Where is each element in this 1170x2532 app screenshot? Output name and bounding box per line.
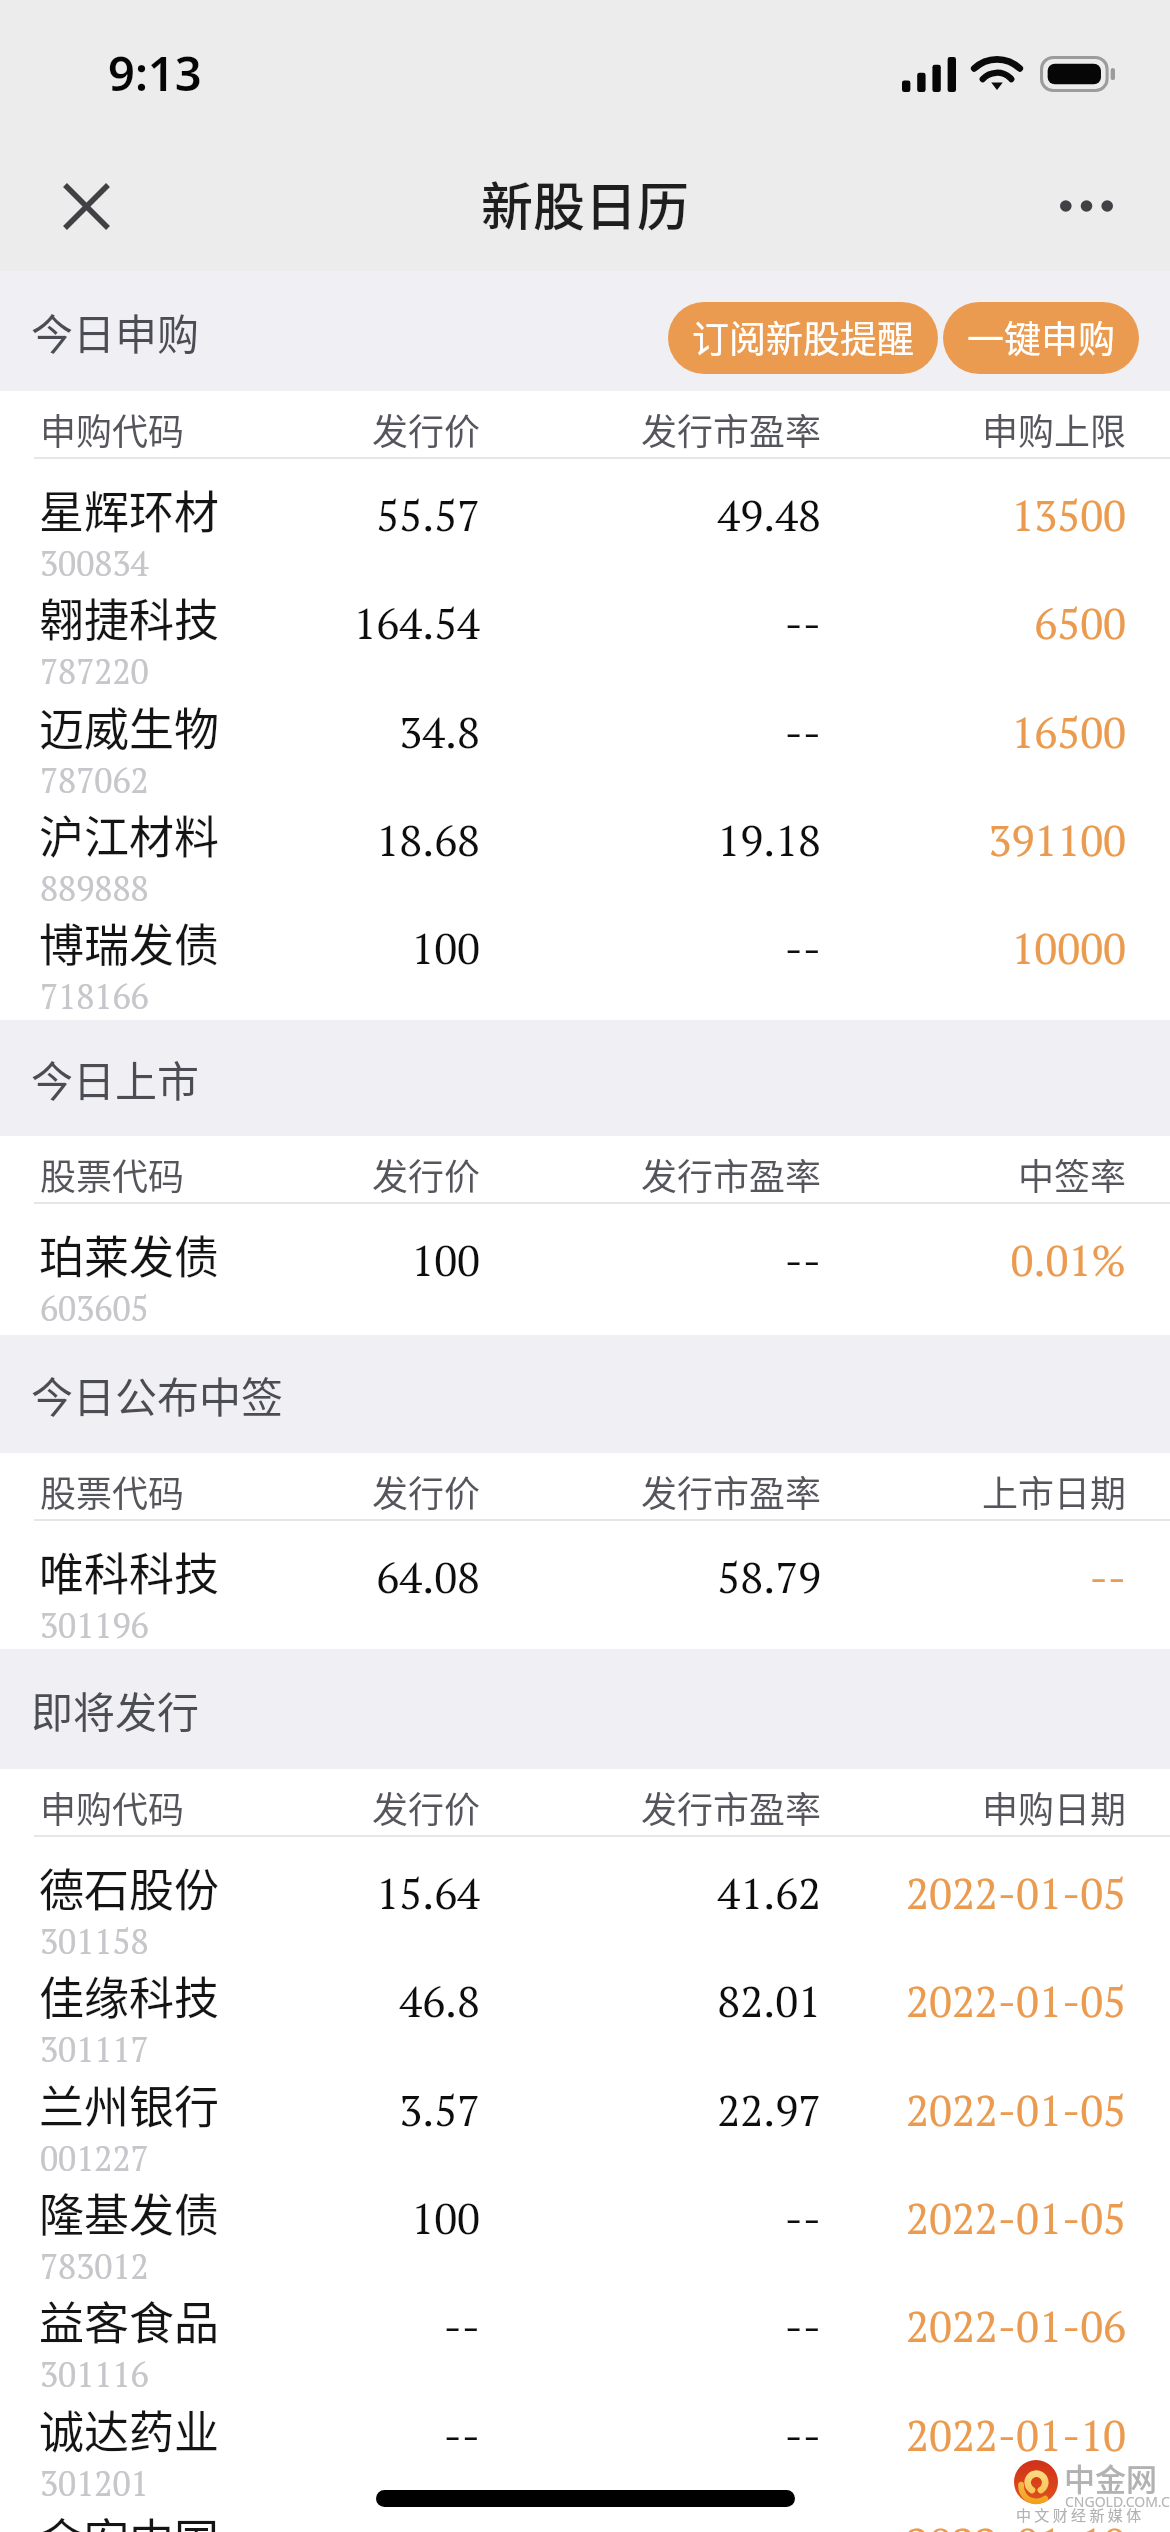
staticText: 博瑞发债 — [39, 910, 220, 975]
staticText: 19.18 — [481, 811, 821, 868]
staticText: 佳缘科技 — [39, 1963, 220, 2028]
staticText: 787062 — [40, 758, 149, 803]
staticText: 9:13 — [108, 41, 202, 105]
staticText: 申购日期 — [786, 1781, 1126, 1833]
staticText: 2022-01-10 — [786, 2406, 1126, 2463]
staticText: 翱捷科技 — [39, 585, 220, 650]
staticText: 中 文 财 经 新 媒 体 — [1016, 2504, 1142, 2526]
staticText: 6500 — [786, 594, 1126, 651]
button[interactable]: 唯科科技 — [0, 1521, 1170, 1629]
staticText: 申购上限 — [786, 403, 1126, 455]
staticText: 100 — [140, 1231, 480, 1288]
staticText: -- — [481, 919, 821, 976]
staticText: 49.48 — [481, 486, 821, 543]
staticText: 中签率 — [786, 1148, 1126, 1200]
staticText: 申购代码 — [40, 1781, 185, 1833]
staticText: 今日申购 — [31, 301, 200, 362]
staticText: 金宏中国 — [39, 2505, 220, 2532]
staticText: 发行市盈率 — [481, 1148, 821, 1200]
staticText: 718166 — [40, 974, 149, 1019]
staticText: 783012 — [40, 2244, 149, 2289]
staticText: 34.8 — [140, 703, 480, 760]
staticText: 15.64 — [140, 1864, 480, 1921]
staticText: 3.57 — [140, 2081, 480, 2138]
staticText: 391100 — [786, 811, 1126, 868]
button[interactable]: 隆基发债 — [0, 2162, 1170, 2270]
staticText: 今日公布中签 — [31, 1364, 284, 1425]
staticText: 迈威生物 — [39, 694, 220, 759]
button[interactable]: 订阅新股提醒 — [668, 302, 938, 374]
staticText: 301116 — [40, 2352, 149, 2397]
staticText: 申购代码 — [40, 403, 185, 455]
staticText: 中金网 — [1064, 2455, 1157, 2500]
staticText: 珀莱发债 — [39, 1222, 220, 1287]
staticText: 001227 — [40, 2136, 149, 2181]
staticText: 股票代码 — [40, 1148, 185, 1200]
staticText: 2022-01-05 — [786, 2189, 1126, 2246]
staticText: 64.08 — [140, 1548, 480, 1605]
button[interactable]: 博瑞发债 — [0, 892, 1170, 1001]
staticText: 300834 — [40, 541, 149, 586]
staticText: 唯科科技 — [39, 1539, 220, 1604]
staticText: 上市日期 — [786, 1465, 1126, 1517]
staticText: -- — [140, 2297, 480, 2354]
button[interactable]: 珀莱发债 — [0, 1204, 1170, 1312]
button[interactable]: 迈威生物 — [0, 676, 1170, 784]
staticText: 301117 — [40, 2027, 149, 2072]
staticText: 301196 — [40, 1603, 149, 1648]
staticText: -- — [786, 1548, 1126, 1605]
staticText: -- — [140, 2406, 480, 2463]
staticText: -- — [481, 2406, 821, 2463]
button[interactable]: 德石股份 — [0, 1837, 1170, 1945]
button[interactable]: 诚达药业 — [0, 2379, 1170, 2487]
staticText: 58.79 — [481, 1548, 821, 1605]
staticText: 发行市盈率 — [481, 1465, 821, 1517]
staticText: 股票代码 — [40, 1465, 185, 1517]
button[interactable]: 佳缘科技 — [0, 1945, 1170, 2054]
staticText: 隆基发债 — [39, 2180, 220, 2245]
button[interactable]: 益客食品 — [0, 2270, 1170, 2379]
staticText: 益客食品 — [39, 2288, 220, 2353]
staticText: 新股日历 — [481, 166, 690, 241]
staticText: 46.8 — [140, 1972, 480, 2029]
button[interactable]: 兰州银行 — [0, 2054, 1170, 2162]
staticText: 2022-01-05 — [786, 1864, 1126, 1921]
staticText: 41.62 — [481, 1864, 821, 1921]
button[interactable]: 星辉环材 — [0, 459, 1170, 567]
staticText: 沪江材料 — [39, 802, 220, 867]
button[interactable]: 金宏中国 — [0, 2487, 1170, 2532]
staticText: 2022-01-05 — [786, 2081, 1126, 2138]
staticText: 100 — [140, 2189, 480, 2246]
staticText: 164.54 — [140, 594, 480, 651]
staticText: 星辉环材 — [39, 477, 220, 542]
staticText: 2022-01-10 — [786, 2514, 1126, 2532]
staticText: 一键申购 — [967, 310, 1115, 364]
staticText: 18.68 — [140, 811, 480, 868]
staticText: 55.57 — [140, 486, 480, 543]
staticText: 发行价 — [140, 1465, 480, 1517]
staticText: 即将发行 — [31, 1679, 200, 1740]
button[interactable]: Close — [38, 158, 134, 254]
staticText: -- — [481, 703, 821, 760]
staticText: 2022-01-05 — [786, 1972, 1126, 2029]
staticText: 10000 — [786, 919, 1126, 976]
button[interactable]: 沪江材料 — [0, 784, 1170, 892]
staticText: 发行价 — [140, 1781, 480, 1833]
staticText: 889888 — [40, 866, 149, 911]
button[interactable]: More options — [1038, 158, 1134, 254]
staticText: 2022-01-06 — [786, 2297, 1126, 2354]
staticText: CNGOLD.COM.CN — [1065, 2492, 1170, 2511]
staticText: 603605 — [40, 1286, 149, 1331]
staticText: 0.01% — [786, 1231, 1126, 1288]
staticText: 发行价 — [140, 1148, 480, 1200]
staticText: 16500 — [786, 703, 1126, 760]
staticText: 100 — [140, 919, 480, 976]
button[interactable]: 翱捷科技 — [0, 567, 1170, 676]
staticText: 发行价 — [140, 403, 480, 455]
staticText: 今日上市 — [31, 1048, 200, 1109]
staticText: 发行市盈率 — [481, 1781, 821, 1833]
button[interactable]: 一键申购 — [943, 302, 1139, 374]
staticText: 诚达药业 — [39, 2397, 220, 2462]
staticText: 301158 — [40, 1919, 149, 1964]
